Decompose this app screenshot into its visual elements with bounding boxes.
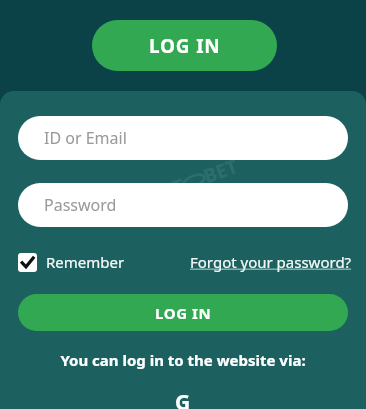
staticText: LOG IN: [155, 303, 212, 323]
button[interactable]: Sign in with Google: [170, 388, 196, 409]
staticText: Password: [44, 194, 117, 216]
button[interactable]: Remember: [18, 252, 129, 272]
button[interactable]: ID or Email: [18, 116, 348, 160]
staticText: LOG IN: [149, 33, 221, 59]
button[interactable]: LOG IN: [18, 294, 348, 331]
button[interactable]: Forgot your password?: [190, 252, 352, 272]
staticText: SILENT: [117, 172, 188, 219]
staticText: Forgot your password?: [190, 252, 352, 272]
staticText: Remember: [46, 252, 125, 272]
staticText: BET: [200, 153, 242, 189]
staticText: G: [175, 388, 191, 409]
button[interactable]: LOG IN: [92, 20, 277, 71]
button[interactable]: Password: [18, 183, 348, 227]
staticText: You can log in to the website via:: [0, 350, 366, 370]
staticText: ID or Email: [44, 127, 127, 149]
